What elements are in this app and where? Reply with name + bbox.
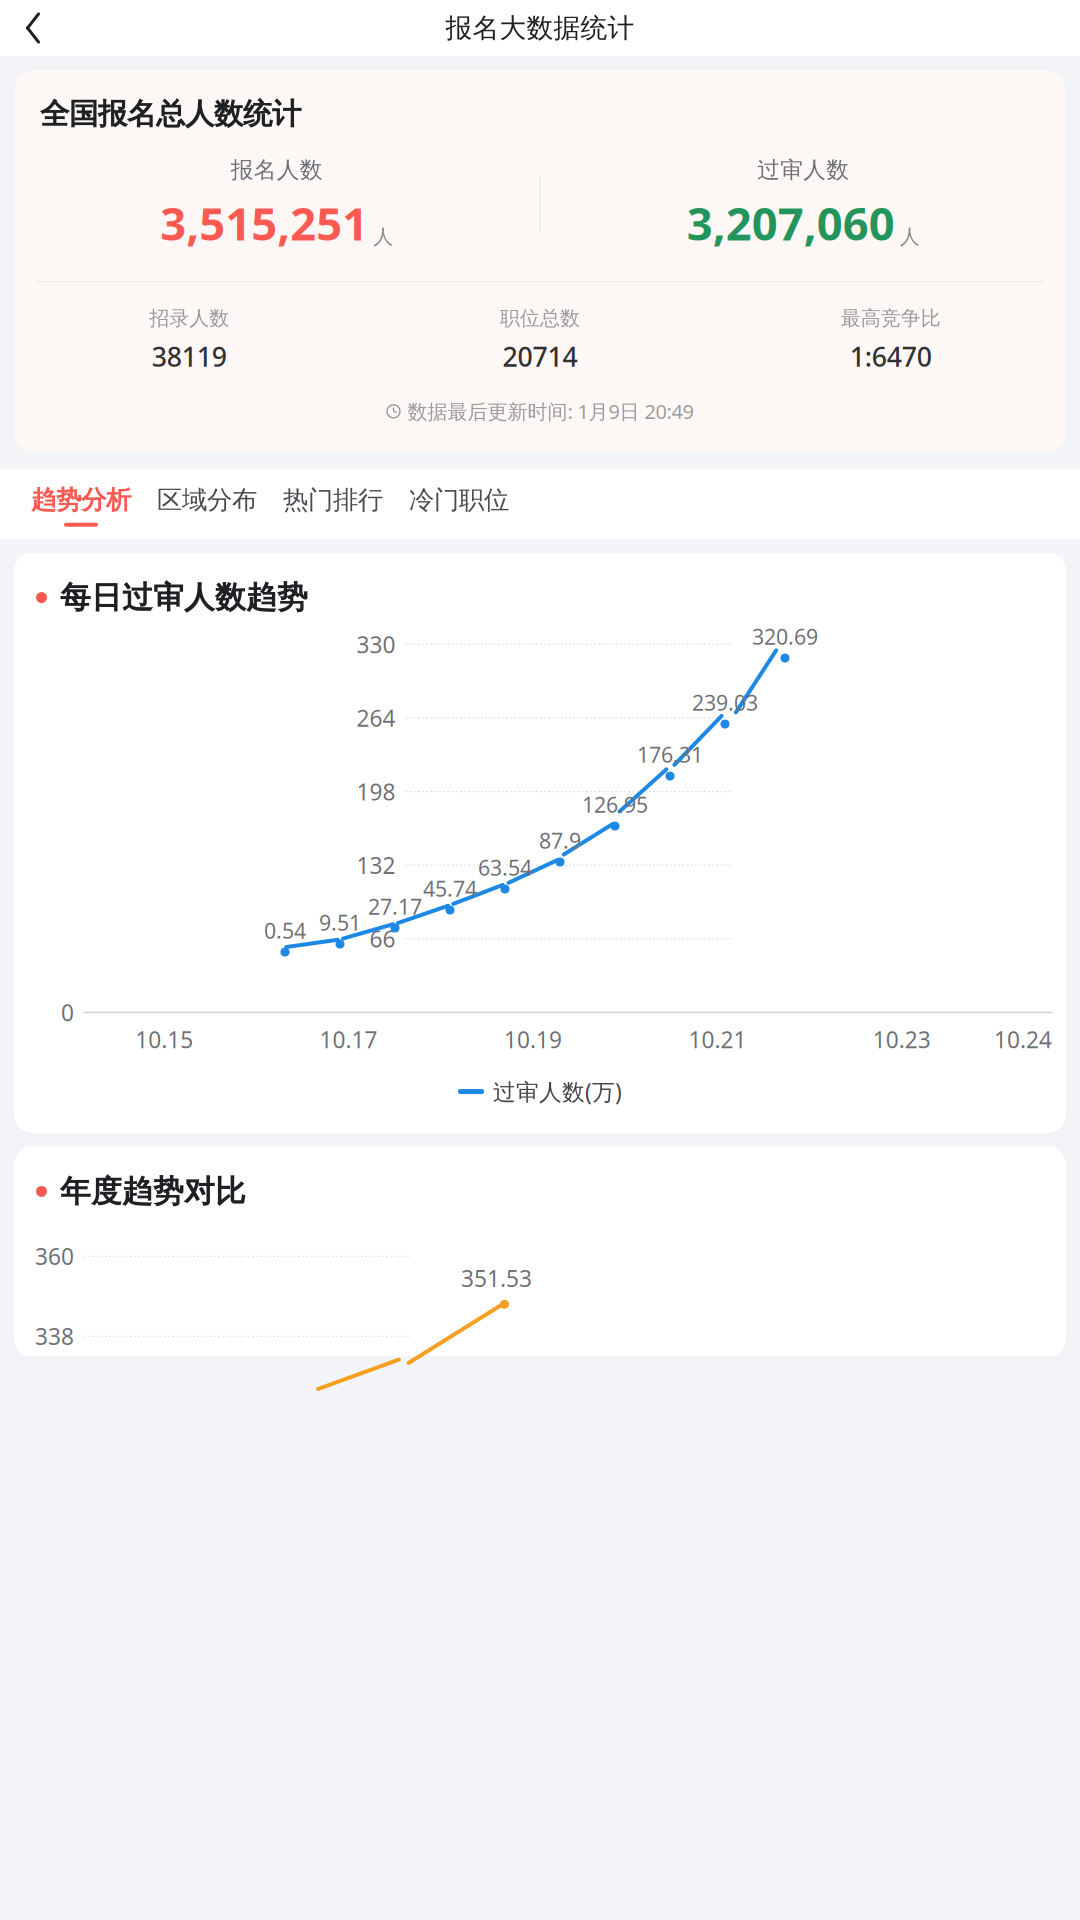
staticText: 招录人数 xyxy=(149,306,229,331)
staticText: 20714 xyxy=(502,339,577,374)
staticText: 176.31 xyxy=(637,740,703,768)
staticText: 3,207,060 xyxy=(687,193,895,253)
staticText: 239.03 xyxy=(692,688,758,716)
staticText: 9.51 xyxy=(319,908,361,936)
staticText: 年度趋势对比 xyxy=(60,1173,246,1210)
staticText: 264 xyxy=(356,703,395,733)
staticText: 360 xyxy=(35,1241,74,1271)
staticText: 351.53 xyxy=(461,1263,532,1293)
staticText: 区域分布 xyxy=(157,485,257,516)
staticText: 10.23 xyxy=(873,1024,931,1054)
staticText: 报名人数 xyxy=(231,156,323,184)
staticText: 87.9 xyxy=(539,826,581,854)
staticText: 过审人数(万) xyxy=(493,1076,622,1107)
staticText: 126.95 xyxy=(582,790,648,818)
staticText: 全国报名总人数统计 xyxy=(40,96,301,132)
staticText: 数据最后更新时间: 1月9日 20:49 xyxy=(407,398,693,425)
staticText: 320.69 xyxy=(752,622,818,650)
staticText: 热门排行 xyxy=(283,485,383,516)
staticText: 10.15 xyxy=(135,1024,193,1054)
staticText: 人 xyxy=(900,224,920,249)
staticText: 10.24 xyxy=(994,1024,1052,1054)
staticText: 0 xyxy=(61,997,74,1027)
staticText: 198 xyxy=(356,776,395,807)
staticText: 过审人数 xyxy=(757,156,849,184)
staticText: 330 xyxy=(356,629,395,659)
staticText: 45.74 xyxy=(423,874,477,902)
staticText: 10.17 xyxy=(320,1024,378,1054)
button[interactable]: 热门排行 xyxy=(270,469,396,539)
staticText: 职位总数 xyxy=(500,306,580,331)
staticText: 66 xyxy=(369,924,395,954)
staticText: 人 xyxy=(373,224,393,249)
staticText: 0.54 xyxy=(264,916,306,944)
staticText: 10.21 xyxy=(688,1024,746,1054)
staticText: 63.54 xyxy=(478,853,532,881)
staticText: 10.19 xyxy=(504,1024,562,1054)
button[interactable]: 返回 xyxy=(0,0,46,56)
staticText: 报名大数据统计 xyxy=(445,12,634,44)
staticText: 1:6470 xyxy=(850,339,932,374)
staticText: 最高竞争比 xyxy=(841,306,941,331)
staticText: 冷门职位 xyxy=(409,485,509,516)
button[interactable]: 区域分布 xyxy=(144,469,270,539)
button[interactable]: 冷门职位 xyxy=(396,469,522,539)
staticText: 38119 xyxy=(152,339,227,374)
staticText: 趋势分析 xyxy=(31,485,131,516)
staticText: 132 xyxy=(356,850,395,880)
staticText: 3,515,251 xyxy=(160,193,368,253)
staticText: 27.17 xyxy=(368,892,422,920)
staticText: 每日过审人数趋势 xyxy=(60,579,308,616)
button[interactable]: 趋势分析 xyxy=(18,469,144,539)
staticText: 338 xyxy=(35,1321,74,1351)
